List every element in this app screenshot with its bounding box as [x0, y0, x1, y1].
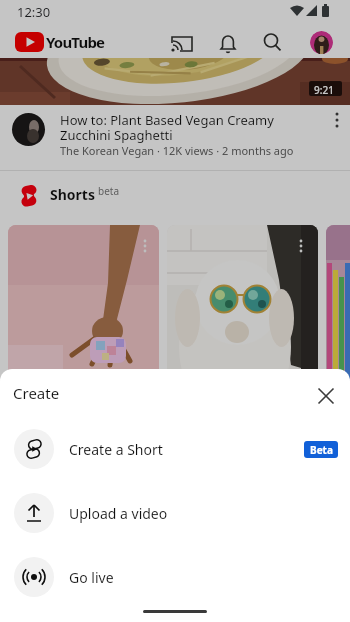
staticText: Zucchini Spaghetti — [60, 126, 173, 144]
button[interactable] — [15, 32, 44, 52]
staticText: 9:21 — [314, 83, 334, 97]
button[interactable] — [214, 30, 242, 58]
button[interactable]: 9:21 — [0, 58, 350, 105]
staticText: Beta — [310, 443, 333, 457]
button[interactable]: Go live — [0, 545, 350, 609]
button[interactable] — [168, 30, 196, 58]
button[interactable] — [310, 31, 333, 54]
staticText: Go live — [69, 568, 114, 587]
staticText: The Korean Vegan · 12K views · 2 months … — [60, 143, 294, 158]
button[interactable] — [167, 225, 318, 435]
button[interactable]: Upload a video — [0, 481, 350, 545]
staticText: Upload a video — [69, 504, 168, 523]
staticText: beta — [98, 184, 120, 198]
staticText: YouTube — [46, 32, 105, 52]
staticText: Create — [13, 383, 60, 403]
staticText: Shorts — [50, 185, 95, 204]
staticText: Create a Short — [69, 440, 163, 459]
button[interactable] — [258, 30, 286, 58]
staticText: How to: Plant Based Vegan Creamy — [60, 111, 274, 129]
button[interactable] — [312, 382, 340, 410]
button[interactable] — [8, 225, 159, 435]
button[interactable]: How to: Plant Based Vegan Creamy — [0, 105, 350, 167]
staticText: 12:30 — [17, 3, 51, 21]
button[interactable]: Create a Short — [0, 417, 350, 481]
button[interactable] — [326, 225, 350, 435]
